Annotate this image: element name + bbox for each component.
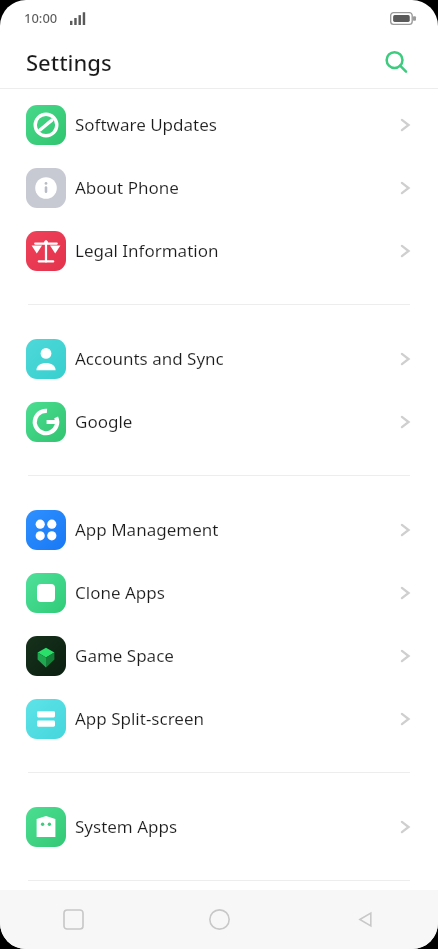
button[interactable]: Google	[0, 390, 438, 453]
button[interactable]: Search	[376, 42, 416, 82]
button[interactable]: Accounts and Sync	[0, 327, 438, 390]
button[interactable]: System Apps	[0, 795, 438, 858]
button[interactable]: Clone Apps	[0, 561, 438, 624]
staticText: About Phone	[75, 176, 394, 199]
button[interactable]: Game Space	[0, 624, 438, 687]
button[interactable]: About Phone	[0, 156, 438, 219]
staticText: App Split-screen	[75, 707, 394, 730]
staticText: Settings	[26, 47, 112, 77]
button[interactable]: App Split-screen	[0, 687, 438, 750]
button[interactable]: Back	[292, 890, 438, 949]
button[interactable]: App Management	[0, 498, 438, 561]
button[interactable]: Software Updates	[0, 93, 438, 156]
staticText: Clone Apps	[75, 581, 394, 604]
staticText: Google	[75, 410, 394, 433]
staticText: Game Space	[75, 644, 394, 667]
staticText: 10:00	[24, 9, 58, 27]
staticText: App Management	[75, 518, 394, 541]
button[interactable]: Legal Information	[0, 219, 438, 282]
staticText: Accounts and Sync	[75, 347, 394, 370]
button[interactable]: Home	[146, 890, 292, 949]
staticText: Legal Information	[75, 239, 394, 262]
staticText: System Apps	[75, 815, 394, 838]
staticText: Software Updates	[75, 113, 394, 136]
button[interactable]: Recent apps	[0, 890, 146, 949]
